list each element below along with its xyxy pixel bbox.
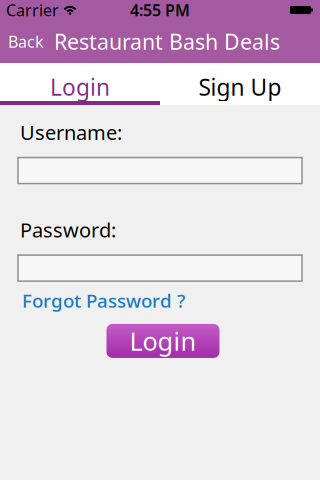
staticText: Username:	[20, 119, 122, 146]
staticText: Forgot Password ?	[22, 288, 185, 313]
button[interactable]: Back	[0, 20, 46, 63]
staticText: Back	[8, 31, 44, 52]
staticText: Login	[129, 324, 196, 358]
button[interactable]: Forgot Password ?	[0, 281, 185, 313]
button[interactable]: Login	[0, 63, 160, 101]
staticText: Password:	[20, 217, 116, 243]
staticText: Login	[50, 72, 110, 102]
staticText: 4:55 PM	[130, 0, 190, 21]
staticText: Restaurant Bash Deals	[54, 27, 280, 56]
staticText: Carrier	[6, 0, 59, 21]
button[interactable]: Sign Up	[160, 63, 320, 101]
button[interactable]: Login	[106, 324, 219, 358]
staticText: Sign Up	[198, 72, 281, 102]
